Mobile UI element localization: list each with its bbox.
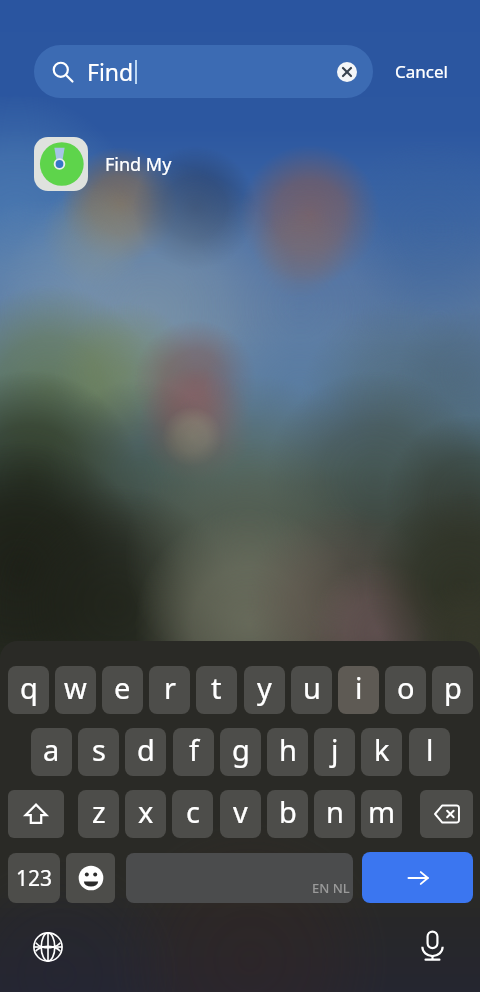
staticText: t	[211, 668, 222, 707]
staticText: o	[397, 668, 415, 707]
button[interactable]: Cancel	[386, 55, 458, 87]
staticText: a	[43, 730, 60, 769]
staticText: y	[257, 668, 272, 707]
staticText: c	[186, 792, 200, 831]
staticText: u	[303, 668, 321, 707]
staticText: 123	[16, 864, 53, 893]
button[interactable]: q	[8, 666, 49, 714]
staticText: g	[232, 730, 250, 769]
staticText: z	[92, 792, 106, 831]
button[interactable]: p	[432, 666, 473, 714]
button[interactable]: n	[314, 790, 355, 838]
button[interactable]: u	[291, 666, 332, 714]
button[interactable]: Space	[126, 853, 353, 903]
staticText: f	[189, 730, 199, 769]
button[interactable]: a	[31, 728, 72, 776]
button[interactable]: d	[125, 728, 166, 776]
button[interactable]: c	[172, 790, 213, 838]
button[interactable]: o	[385, 666, 426, 714]
staticText: Cancel	[395, 60, 448, 83]
button[interactable]: v	[220, 790, 261, 838]
staticText: h	[279, 730, 297, 769]
staticText: v	[233, 792, 248, 831]
button[interactable]: w	[55, 666, 96, 714]
staticText: m	[368, 792, 396, 831]
button[interactable]: x	[125, 790, 166, 838]
button[interactable]: Emoji	[66, 853, 115, 903]
button[interactable]: b	[267, 790, 308, 838]
button[interactable]: r	[149, 666, 190, 714]
staticText: l	[426, 730, 434, 769]
staticText: Find	[87, 56, 134, 87]
staticText: d	[137, 730, 155, 769]
staticText: j	[331, 730, 339, 769]
staticText: b	[279, 792, 297, 831]
staticText: n	[326, 792, 344, 831]
staticText: EN NL	[312, 879, 350, 897]
staticText: w	[64, 668, 87, 707]
staticText: q	[20, 668, 38, 707]
staticText: i	[355, 668, 363, 707]
button[interactable]: e	[102, 666, 143, 714]
button[interactable]: Go	[362, 852, 473, 903]
button[interactable]: g	[220, 728, 261, 776]
button[interactable]: i	[338, 666, 379, 714]
button[interactable]: y	[244, 666, 285, 714]
button[interactable]: m	[361, 790, 402, 838]
button[interactable]: z	[78, 790, 119, 838]
button[interactable]: t	[196, 666, 237, 714]
button[interactable]: 123	[8, 853, 60, 903]
button[interactable]: k	[361, 728, 402, 776]
button[interactable]: Find My	[0, 130, 480, 198]
button[interactable]: Change keyboard	[33, 932, 63, 962]
staticText: p	[444, 668, 462, 707]
button[interactable]: j	[314, 728, 355, 776]
staticText: s	[92, 730, 106, 769]
button[interactable]: Backspace	[420, 790, 473, 838]
staticText: Find My	[105, 152, 172, 177]
staticText: e	[114, 668, 131, 707]
button[interactable]: f	[173, 728, 214, 776]
button[interactable]: Find	[34, 45, 373, 98]
button[interactable]: Voice input	[418, 929, 447, 962]
button[interactable]: s	[78, 728, 119, 776]
staticText: x	[138, 792, 154, 831]
button[interactable]: Shift	[8, 790, 64, 838]
button[interactable]: h	[267, 728, 308, 776]
staticText: r	[164, 668, 176, 707]
staticText: k	[374, 730, 390, 769]
button[interactable]: l	[409, 728, 450, 776]
